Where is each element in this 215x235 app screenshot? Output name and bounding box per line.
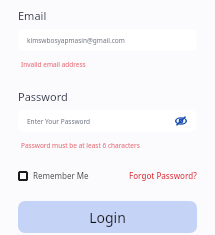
button[interactable]: Toggle password visibility	[174, 114, 188, 128]
button[interactable]: Forgot Password?	[129, 168, 197, 183]
staticText: Forgot Password?	[129, 170, 197, 181]
button[interactable]: Remember Me	[18, 168, 89, 183]
staticText: Password must be at least 6 characters	[21, 141, 140, 150]
button[interactable]: Enter Your Password	[18, 110, 197, 132]
staticText: kimswbosyapmasin@gmail.com	[27, 36, 125, 45]
staticText: Email	[18, 8, 47, 23]
staticText: Invalid email address	[21, 60, 86, 69]
staticText: Password	[18, 89, 68, 104]
button[interactable]: kimswbosyapmasin@gmail.com	[18, 29, 197, 51]
staticText: Login	[89, 208, 126, 227]
staticText: Remember Me	[33, 170, 89, 181]
button[interactable]: Login	[18, 201, 197, 233]
staticText: Enter Your Password	[27, 117, 174, 126]
